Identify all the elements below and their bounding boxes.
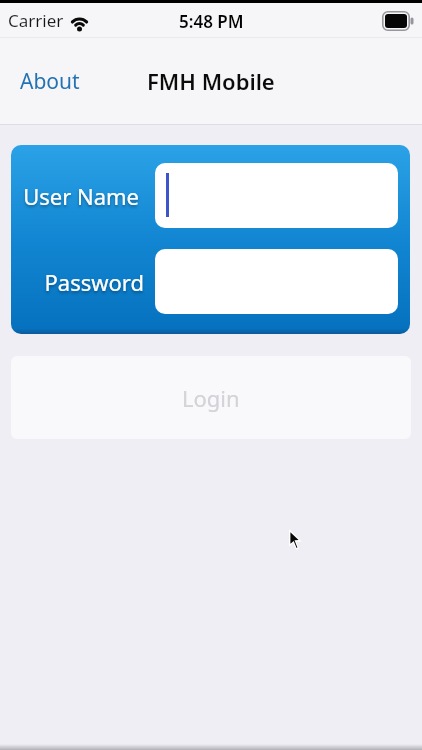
button[interactable]: About xyxy=(12,59,88,104)
staticText: User Name xyxy=(23,181,139,211)
staticText: Login xyxy=(182,383,240,413)
staticText: 5:48 PM xyxy=(179,10,244,33)
button[interactable] xyxy=(155,163,398,228)
button[interactable] xyxy=(155,249,398,314)
staticText: FMH Mobile xyxy=(147,66,275,96)
staticText: Carrier xyxy=(8,9,64,32)
button[interactable]: Login xyxy=(11,356,411,439)
staticText: Password xyxy=(44,267,144,297)
staticText: About xyxy=(20,67,80,96)
